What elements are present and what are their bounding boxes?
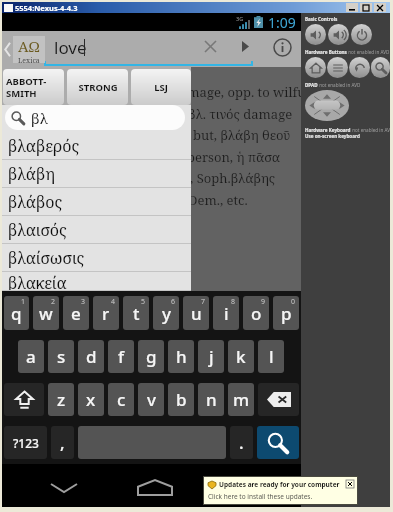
- staticText: damage, opp. to wilful: [172, 83, 310, 101]
- button[interactable]: Menu: [327, 57, 348, 78]
- button[interactable]: k: [228, 340, 254, 373]
- staticText: βλαισός: [8, 219, 67, 241]
- staticText: Hardware Buttons: [305, 49, 347, 55]
- button[interactable]: βλάβη: [2, 160, 191, 188]
- button[interactable]: l: [258, 340, 284, 373]
- button[interactable]: LSJ: [131, 69, 191, 105]
- button[interactable]: a: [18, 340, 44, 373]
- button[interactable]: t: [123, 296, 149, 330]
- staticText: 8: [231, 297, 236, 307]
- button[interactable]: i: [213, 296, 239, 330]
- staticText: w: [39, 302, 53, 325]
- staticText: 5554:Nexus-4-4.3: [15, 3, 78, 13]
- button[interactable]: e: [63, 296, 89, 330]
- staticText: Dem., etc.: [188, 191, 248, 209]
- staticText: 1: [21, 297, 26, 307]
- button[interactable]: Search: [371, 57, 390, 78]
- button[interactable]: STRONG: [67, 69, 128, 105]
- button[interactable]: βλαισός: [2, 216, 191, 244]
- staticText: 2: [51, 297, 56, 307]
- button[interactable]: g: [138, 340, 164, 373]
- staticText: Use on-screen keyboard: [305, 133, 360, 139]
- button[interactable]: Window button: [360, 3, 372, 12]
- staticText: person, ἡ πᾶσα: [187, 148, 281, 166]
- staticText: g: [146, 345, 157, 368]
- staticText: ABBOTT- SMITH: [6, 75, 47, 100]
- button[interactable]: βλακεία: [2, 272, 191, 291]
- button[interactable]: r: [93, 296, 119, 330]
- staticText: l: [269, 345, 274, 368]
- button[interactable]: Home: [125, 464, 185, 507]
- button[interactable]: Shift: [4, 383, 44, 416]
- button[interactable]: Search: [257, 426, 299, 459]
- button[interactable]: Volume down: [305, 24, 326, 45]
- staticText: o: [251, 302, 262, 325]
- staticText: Lexica: [18, 56, 40, 63]
- staticText: q: [11, 302, 22, 325]
- staticText: .: [239, 431, 244, 454]
- staticText: d: [86, 345, 97, 368]
- button[interactable]: p: [273, 296, 299, 330]
- staticText: y: [162, 302, 171, 325]
- button[interactable]: Close notification: [346, 480, 354, 488]
- button[interactable]: love: [45, 31, 195, 67]
- button[interactable]: ABBOTT- SMITH: [3, 69, 64, 105]
- button[interactable]: βλαβερός: [2, 132, 191, 160]
- button[interactable]: Submit search: [230, 31, 260, 67]
- staticText: βλάβη: [8, 163, 55, 185]
- button[interactable]: m: [228, 383, 254, 416]
- button[interactable]: Volume up: [328, 24, 349, 45]
- button[interactable]: Clear: [195, 31, 225, 67]
- button[interactable]: o: [243, 296, 269, 330]
- staticText: Updates are ready for your computer: [219, 480, 340, 489]
- button[interactable]: z: [48, 383, 74, 416]
- staticText: x: [86, 388, 96, 411]
- button[interactable]: Delete: [258, 383, 299, 416]
- button[interactable]: h: [168, 340, 194, 373]
- button[interactable]: Info: [265, 31, 299, 67]
- staticText: v: [147, 388, 156, 411]
- button[interactable]: s: [48, 340, 74, 373]
- button[interactable]: Hide keyboard: [34, 464, 94, 507]
- button[interactable]: .: [230, 426, 253, 459]
- staticText: b: [176, 388, 187, 411]
- button[interactable]: βλ: [5, 105, 185, 130]
- button[interactable]: v: [138, 383, 164, 416]
- staticText: u: [191, 302, 202, 325]
- staticText: 6: [171, 297, 176, 307]
- button[interactable]: βλαίσωσις: [2, 244, 191, 272]
- staticText: βλακεία: [8, 272, 67, 291]
- button[interactable]: b: [168, 383, 194, 416]
- button[interactable]: Power: [351, 24, 372, 45]
- button[interactable]: n: [198, 383, 224, 416]
- button[interactable]: Home: [305, 57, 326, 78]
- staticText: i: [224, 302, 229, 325]
- staticText: DPAD: [305, 82, 318, 88]
- staticText: 5: [141, 297, 146, 307]
- staticText: c: [117, 388, 126, 411]
- button[interactable]: ?123: [4, 426, 47, 459]
- button[interactable]: y: [153, 296, 179, 330]
- button[interactable]: q: [4, 296, 29, 330]
- staticText: m: [233, 388, 250, 411]
- button[interactable]: Up: [2, 31, 45, 67]
- staticText: but, βλάβη θεοῦ: [193, 126, 291, 144]
- button[interactable]: βλάβος: [2, 188, 191, 216]
- staticText: ?123: [13, 435, 39, 451]
- button[interactable]: x: [78, 383, 104, 416]
- button[interactable]: w: [33, 296, 59, 330]
- button[interactable]: DPAD: [305, 90, 349, 121]
- button[interactable]: Window button: [346, 3, 358, 12]
- button[interactable]: Window button: [374, 3, 386, 12]
- button[interactable]: ,: [51, 426, 74, 459]
- button[interactable]: u: [183, 296, 209, 330]
- button[interactable]: j: [198, 340, 224, 373]
- staticText: s: [57, 345, 66, 368]
- button[interactable]: f: [108, 340, 134, 373]
- staticText: ΑΩ: [18, 36, 40, 56]
- button[interactable]: c: [108, 383, 134, 416]
- button[interactable]: Back: [349, 57, 370, 78]
- staticText: not enabled in AVD: [351, 127, 390, 133]
- button[interactable]: d: [78, 340, 104, 373]
